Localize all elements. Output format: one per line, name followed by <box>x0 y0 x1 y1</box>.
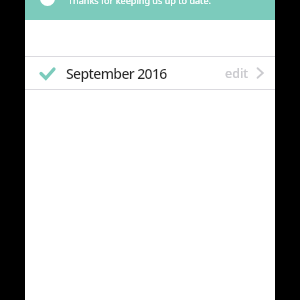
staticText: Thanks for keeping us up to date. <box>68 0 211 6</box>
other: Success <box>40 0 55 6</box>
button[interactable]: edit <box>225 57 275 89</box>
other: Edit September 2016 <box>256 67 268 79</box>
button[interactable]: Success <box>25 0 275 20</box>
other: Completed <box>39 65 56 82</box>
staticText: September 2016 <box>66 64 167 83</box>
button[interactable]: Completed <box>25 57 275 89</box>
staticText: edit <box>225 65 249 82</box>
